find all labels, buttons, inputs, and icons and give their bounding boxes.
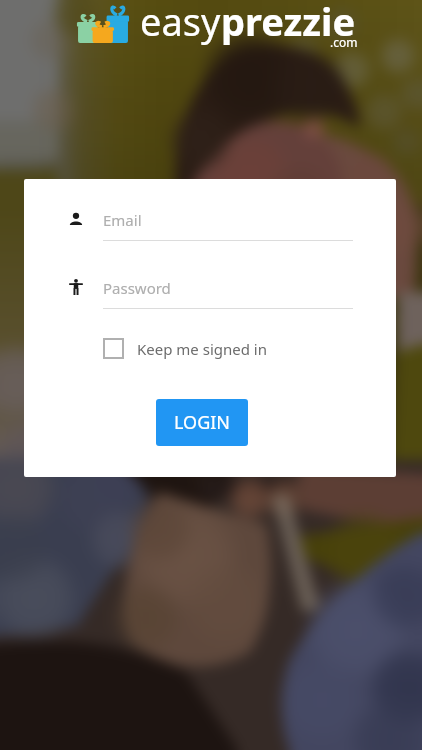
button[interactable]: Keep me signed in	[103, 338, 267, 359]
staticText: Email	[103, 210, 142, 230]
staticText: Password	[103, 278, 171, 298]
button[interactable]: LOGIN	[156, 399, 248, 446]
staticText: LOGIN	[174, 410, 231, 435]
staticText: Keep me signed in	[137, 339, 267, 359]
staticText: prezzie	[221, 0, 356, 47]
staticText: .com	[330, 34, 358, 50]
staticText: easy	[140, 0, 221, 47]
